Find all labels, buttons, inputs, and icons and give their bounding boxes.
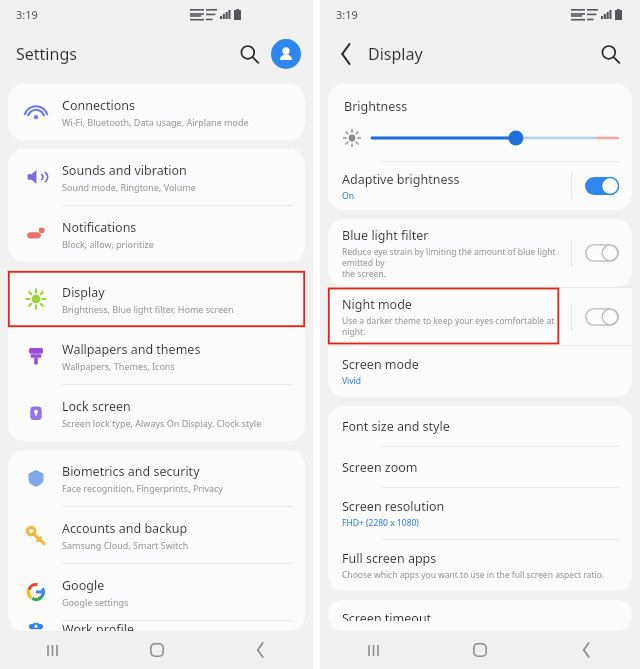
button[interactable]: Blue light filter [582, 241, 622, 265]
staticText: Face recognition, Fingerprints, Privacy [62, 482, 223, 494]
staticText: Connections [62, 97, 135, 114]
button[interactable]: Night mode [328, 288, 632, 345]
button[interactable]: Lock screen [8, 385, 305, 441]
staticText: Google [62, 577, 105, 594]
staticText: Font size and style [342, 418, 450, 435]
button[interactable]: Recents [320, 631, 426, 669]
staticText: Wallpapers, Themes, Icons [62, 360, 175, 372]
button[interactable]: Search [231, 36, 267, 72]
button[interactable]: Home [426, 631, 533, 669]
button[interactable]: Display [8, 271, 305, 327]
button[interactable]: Search [592, 36, 628, 72]
staticText: Night mode [342, 296, 412, 313]
staticText: Brightness [344, 98, 408, 115]
button[interactable]: Account [271, 39, 301, 69]
button[interactable]: Back [209, 631, 313, 669]
staticText: Wi-Fi, Bluetooth, Data usage, Airplane m… [62, 116, 249, 128]
button[interactable]: Screen resolution [328, 488, 632, 539]
button[interactable]: Blue light filter [328, 219, 632, 287]
staticText: Choose which apps you want to use in the… [342, 569, 605, 581]
button[interactable]: Adaptive brightness [582, 174, 622, 198]
staticText: Screen lock type, Always On Display, Clo… [62, 417, 262, 429]
staticText: Samsung Cloud, Smart Switch [62, 539, 189, 551]
button[interactable]: Screen mode [328, 346, 632, 397]
staticText: Accounts and backup [62, 520, 188, 537]
button[interactable]: Back [330, 37, 364, 71]
staticText: Work profile [62, 621, 134, 631]
staticText: Settings [16, 43, 77, 65]
button[interactable]: Connections [8, 84, 305, 140]
button[interactable]: Home [105, 631, 209, 669]
staticText: Reduce eye strain by limiting the amount… [342, 246, 571, 279]
staticText: Block, allow, prioritize [62, 238, 154, 250]
staticText: Biometrics and security [62, 463, 200, 480]
button[interactable]: Screen zoom [328, 447, 632, 487]
button[interactable]: Wallpapers and themes [8, 328, 305, 384]
staticText: Adaptive brightness [342, 171, 460, 188]
staticText: Display [62, 284, 105, 301]
button[interactable]: Font size and style [328, 406, 632, 446]
staticText: Google settings [62, 596, 129, 608]
staticText: FHD+ (2280 x 1080) [342, 517, 419, 529]
staticText: Blue light filter [342, 227, 429, 244]
button[interactable]: Notifications [8, 206, 305, 262]
staticText: Screen timeout [342, 610, 432, 621]
button[interactable]: Night mode [582, 305, 622, 329]
staticText: Sound mode, Ringtone, Volume [62, 181, 196, 193]
staticText: Lock screen [62, 398, 131, 415]
button[interactable]: Biometrics and security [8, 450, 305, 506]
staticText: Vivid [342, 375, 362, 387]
staticText: 3:19 [336, 7, 358, 22]
staticText: Use a darker theme to keep your eyes com… [342, 315, 571, 337]
button[interactable]: Sounds and vibration [8, 149, 305, 205]
staticText: Full screen apps [342, 550, 437, 567]
button[interactable]: Display [8, 271, 305, 327]
staticText: Screen resolution [342, 498, 445, 515]
staticText: Screen zoom [342, 459, 418, 476]
staticText: Notifications [62, 219, 137, 236]
button[interactable]: Work profile [8, 621, 305, 631]
staticText: Sounds and vibration [62, 162, 187, 179]
staticText: On [342, 190, 354, 202]
button[interactable]: Adaptive brightness [328, 162, 632, 210]
staticText: Wallpapers and themes [62, 341, 201, 358]
button[interactable]: Google [8, 564, 305, 620]
button[interactable]: Accounts and backup [8, 507, 305, 563]
button[interactable]: Recents [0, 631, 105, 669]
staticText: Display [368, 43, 423, 65]
staticText: Brightness, Blue light filter, Home scre… [62, 303, 234, 315]
button[interactable]: Full screen apps [328, 540, 632, 591]
staticText: Screen mode [342, 356, 419, 373]
button[interactable]: Screen timeout [328, 600, 632, 631]
button[interactable]: Back [533, 631, 640, 669]
staticText: 3:19 [16, 7, 38, 22]
